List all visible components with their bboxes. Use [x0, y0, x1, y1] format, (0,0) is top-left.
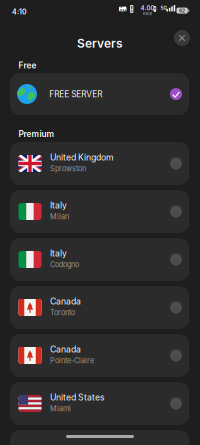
staticText: Milan: [50, 212, 69, 221]
staticText: Italy: [50, 248, 67, 259]
staticText: 62: [179, 7, 185, 14]
button[interactable]: Close: [174, 30, 190, 46]
staticText: Toronto: [50, 308, 75, 317]
staticText: Servers: [77, 36, 123, 50]
button[interactable]: United States: [10, 382, 189, 425]
staticText: Free: [18, 60, 36, 71]
button[interactable]: Italy: [10, 238, 189, 281]
staticText: 4:10: [12, 8, 27, 16]
button[interactable]: Canada: [10, 334, 189, 377]
staticText: 4.00: [140, 4, 154, 12]
staticText: Codogno: [50, 260, 79, 269]
staticText: Sprowston: [50, 164, 86, 173]
staticText: 5G: [160, 5, 167, 11]
button[interactable]: United Kingdom: [10, 142, 189, 185]
button[interactable]: Canada: [10, 286, 189, 329]
staticText: KB/s: [143, 11, 152, 16]
button[interactable]: Italy: [10, 190, 189, 233]
staticText: Pointe-Claire: [50, 356, 94, 365]
staticText: Italy: [50, 200, 67, 211]
button[interactable]: FREE SERVER: [10, 73, 189, 115]
staticText: Premium: [18, 129, 54, 139]
staticText: Canada: [50, 296, 81, 307]
staticText: United States: [50, 392, 105, 403]
staticText: FREE SERVER: [49, 89, 102, 99]
staticText: Miami: [50, 404, 71, 413]
staticText: VPN: [120, 4, 126, 14]
staticText: Canada: [50, 344, 81, 355]
staticText: United Kingdom: [50, 152, 114, 163]
